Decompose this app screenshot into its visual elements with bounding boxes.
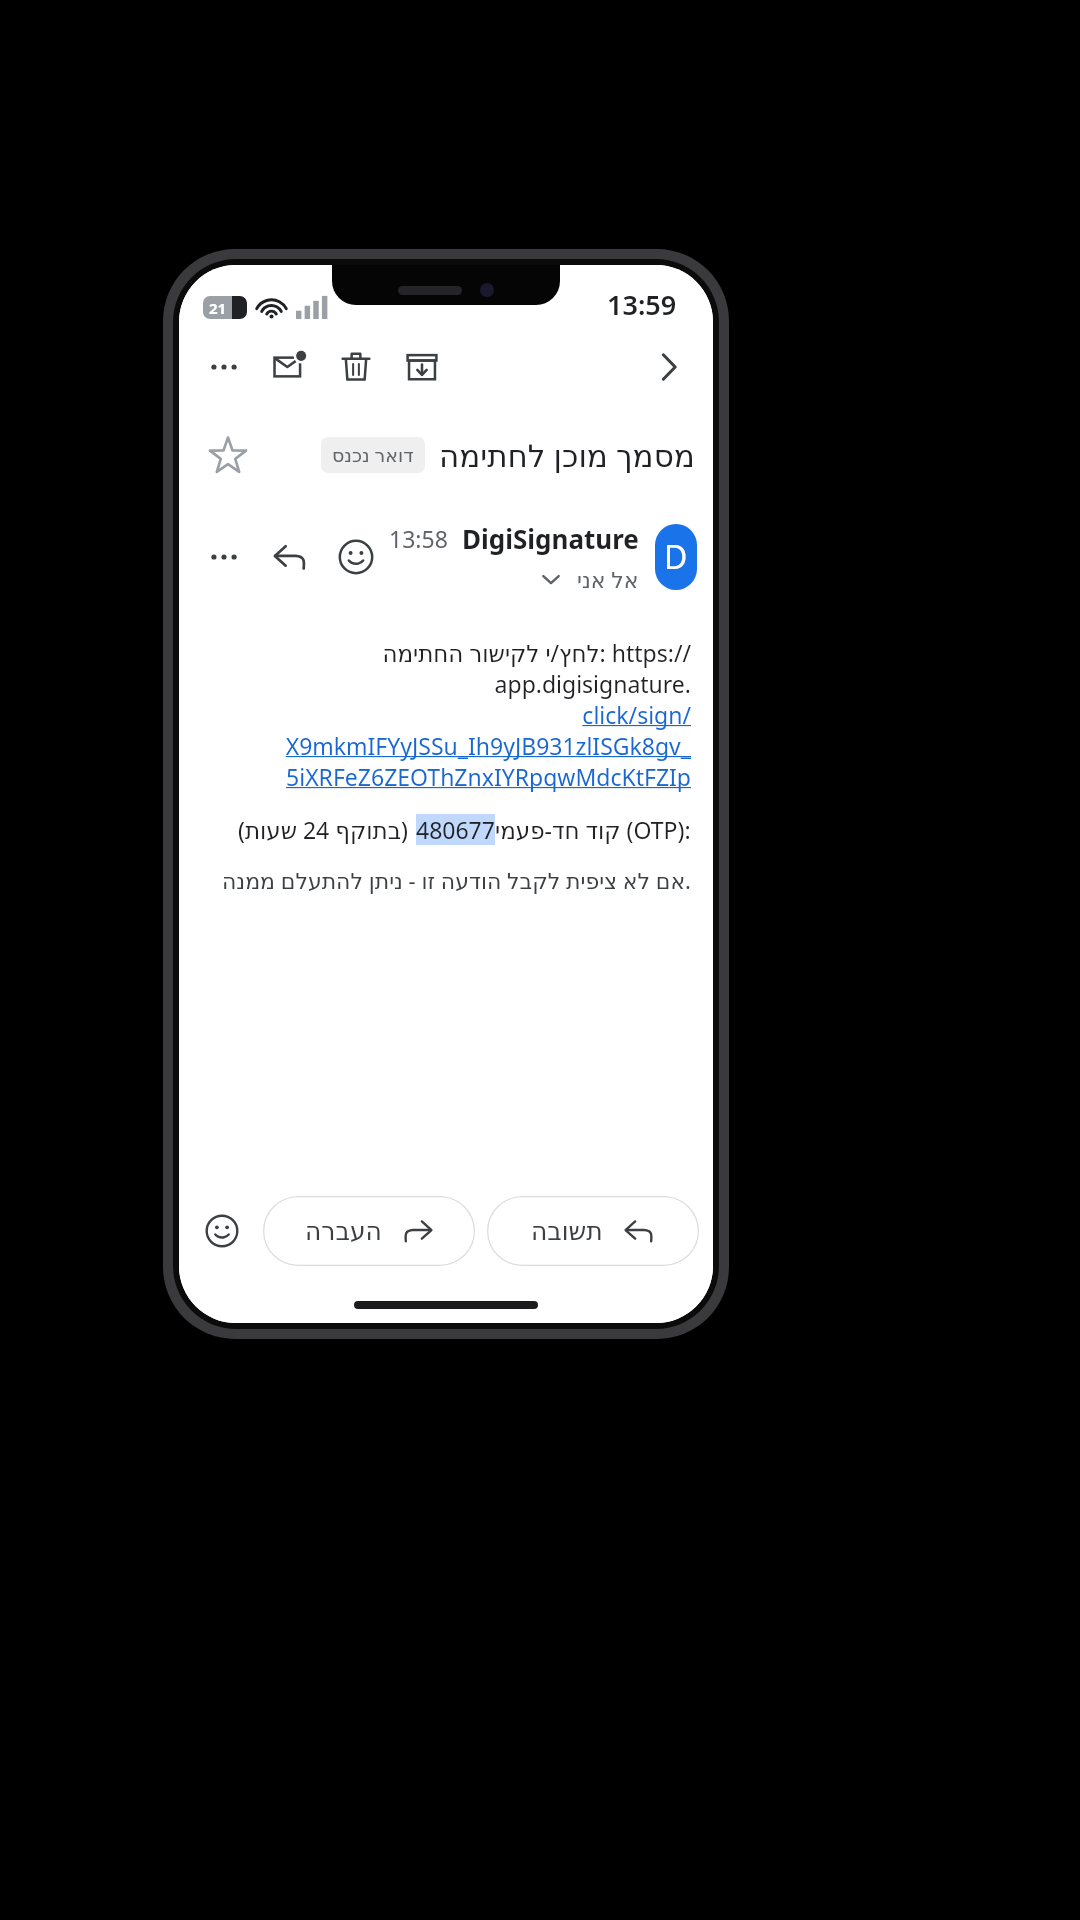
staticText: דואר נכנס (332, 442, 414, 468)
button[interactable]: אל אני (539, 564, 639, 594)
staticText: מסמך מוכן לחתימה (439, 434, 695, 476)
staticText: D (664, 535, 688, 579)
button[interactable]: Sender avatar (655, 524, 697, 590)
button[interactable]: דואר נכנס (321, 437, 425, 473)
button[interactable]: More options (191, 334, 257, 400)
staticText: DigiSignature (462, 521, 639, 556)
button[interactable]: העברה (263, 1196, 475, 1266)
button[interactable]: Next email (635, 334, 701, 400)
button[interactable]: Add emoji reaction (193, 1202, 251, 1260)
staticText: אל אני (577, 564, 639, 594)
staticText: 21 (209, 298, 227, 318)
staticText: 480677 (416, 814, 495, 845)
button[interactable]: Reply (257, 524, 323, 590)
button[interactable]: More options (191, 524, 257, 590)
staticText: 13:58 (389, 523, 448, 554)
button[interactable]: Archive (389, 334, 455, 400)
staticText: click/sign/X9mkmIFYyJSSu_Ih9yJB931zlISGk… (203, 699, 691, 761)
staticText: 13:59 (607, 286, 677, 323)
staticText: אם לא ציפית לקבל הודעה זו - ניתן להתעלם … (222, 865, 691, 895)
staticText: 5iXRFeZ6ZEOThZnxIYRpqwMdcKtFZIp (286, 761, 691, 792)
button[interactable]: תשובה (487, 1196, 699, 1266)
button[interactable]: Mark unread (257, 334, 323, 400)
button[interactable]: Add reaction (323, 524, 389, 590)
button[interactable]: Delete (323, 334, 389, 400)
staticText: תשובה (531, 1217, 603, 1246)
staticText: לחץ/י לקישור החתימה: https://app.digisig… (203, 637, 691, 699)
staticText: קוד חד-פעמי (OTP): (495, 814, 691, 845)
staticText: העברה (305, 1217, 382, 1246)
button[interactable]: Star (197, 424, 259, 486)
staticText: (בתוקף 24 שעות) (238, 814, 408, 845)
